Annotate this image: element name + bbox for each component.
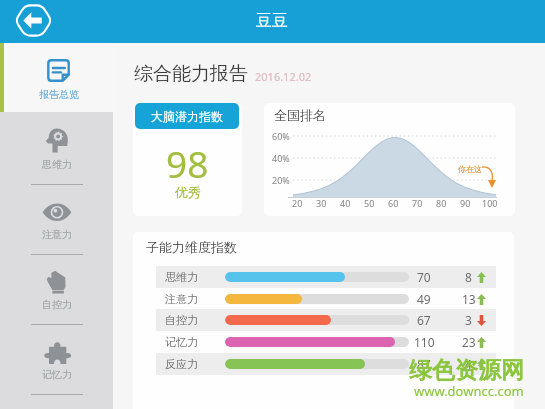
staticText: 子能力维度指数 bbox=[146, 239, 237, 255]
button[interactable]: 思维力 bbox=[156, 266, 496, 288]
staticText: 注意力 bbox=[42, 228, 72, 241]
button[interactable]: 记忆力 bbox=[156, 331, 496, 353]
staticText: 3 bbox=[465, 312, 472, 328]
staticText: 综合能力报告 bbox=[134, 62, 248, 86]
button[interactable]: 注意力 bbox=[156, 288, 496, 310]
staticText: 记忆力 bbox=[165, 335, 198, 349]
staticText: 2016.12.02 bbox=[255, 69, 312, 84]
staticText: 8 bbox=[465, 269, 472, 285]
staticText: 绿色资源网 bbox=[409, 356, 524, 385]
staticText: 注意力 bbox=[165, 292, 198, 306]
staticText: 4 bbox=[465, 356, 472, 372]
staticText: www.downcc.com bbox=[414, 382, 524, 400]
staticText: 你在这 bbox=[458, 164, 482, 174]
staticText: 67 bbox=[417, 312, 431, 328]
staticText: 优秀 bbox=[175, 184, 201, 200]
button[interactable] bbox=[0, 43, 113, 112]
staticText: 23 bbox=[462, 334, 476, 350]
staticText: 反应力 bbox=[165, 357, 198, 371]
button[interactable]: Back bbox=[14, 4, 53, 37]
staticText: 49 bbox=[417, 291, 431, 307]
staticText: 思维力 bbox=[165, 270, 198, 284]
staticText: 110 bbox=[414, 334, 435, 350]
staticText: 13 bbox=[462, 291, 476, 307]
button[interactable]: 反应力 bbox=[156, 353, 496, 375]
staticText: 大脑潜力指数 bbox=[151, 109, 223, 124]
staticText: 98 bbox=[166, 138, 209, 188]
staticText: 60 bbox=[388, 197, 399, 209]
staticText: 40% bbox=[272, 152, 290, 164]
button[interactable]: 思维力 bbox=[0, 115, 113, 185]
button[interactable]: 记忆力 bbox=[0, 325, 113, 395]
staticText: 豆豆 bbox=[256, 11, 288, 31]
staticText: 70 bbox=[417, 269, 431, 285]
staticText: 全国排名 bbox=[274, 107, 326, 123]
staticText: 100 bbox=[482, 197, 498, 209]
staticText: 50 bbox=[364, 197, 375, 209]
staticText: 20 bbox=[292, 197, 303, 209]
button[interactable]: 大脑潜力指数 bbox=[133, 103, 242, 216]
button[interactable]: 注意力 bbox=[0, 185, 113, 255]
staticText: 40 bbox=[340, 197, 351, 209]
staticText: 60% bbox=[272, 130, 290, 142]
button[interactable]: 自控力 bbox=[0, 255, 113, 325]
staticText: 自控力 bbox=[165, 313, 198, 327]
staticText: 思维力 bbox=[42, 158, 72, 171]
staticText: 30 bbox=[316, 197, 327, 209]
staticText: 90 bbox=[460, 197, 471, 209]
button[interactable]: 自控力 bbox=[156, 309, 496, 331]
staticText: 自控力 bbox=[42, 298, 72, 311]
staticText: 70 bbox=[412, 197, 423, 209]
staticText: 80 bbox=[436, 197, 447, 209]
staticText: 记忆力 bbox=[42, 368, 72, 381]
staticText: 87 bbox=[417, 356, 431, 372]
staticText: 报告总览 bbox=[39, 88, 79, 101]
staticText: 20% bbox=[272, 174, 290, 186]
